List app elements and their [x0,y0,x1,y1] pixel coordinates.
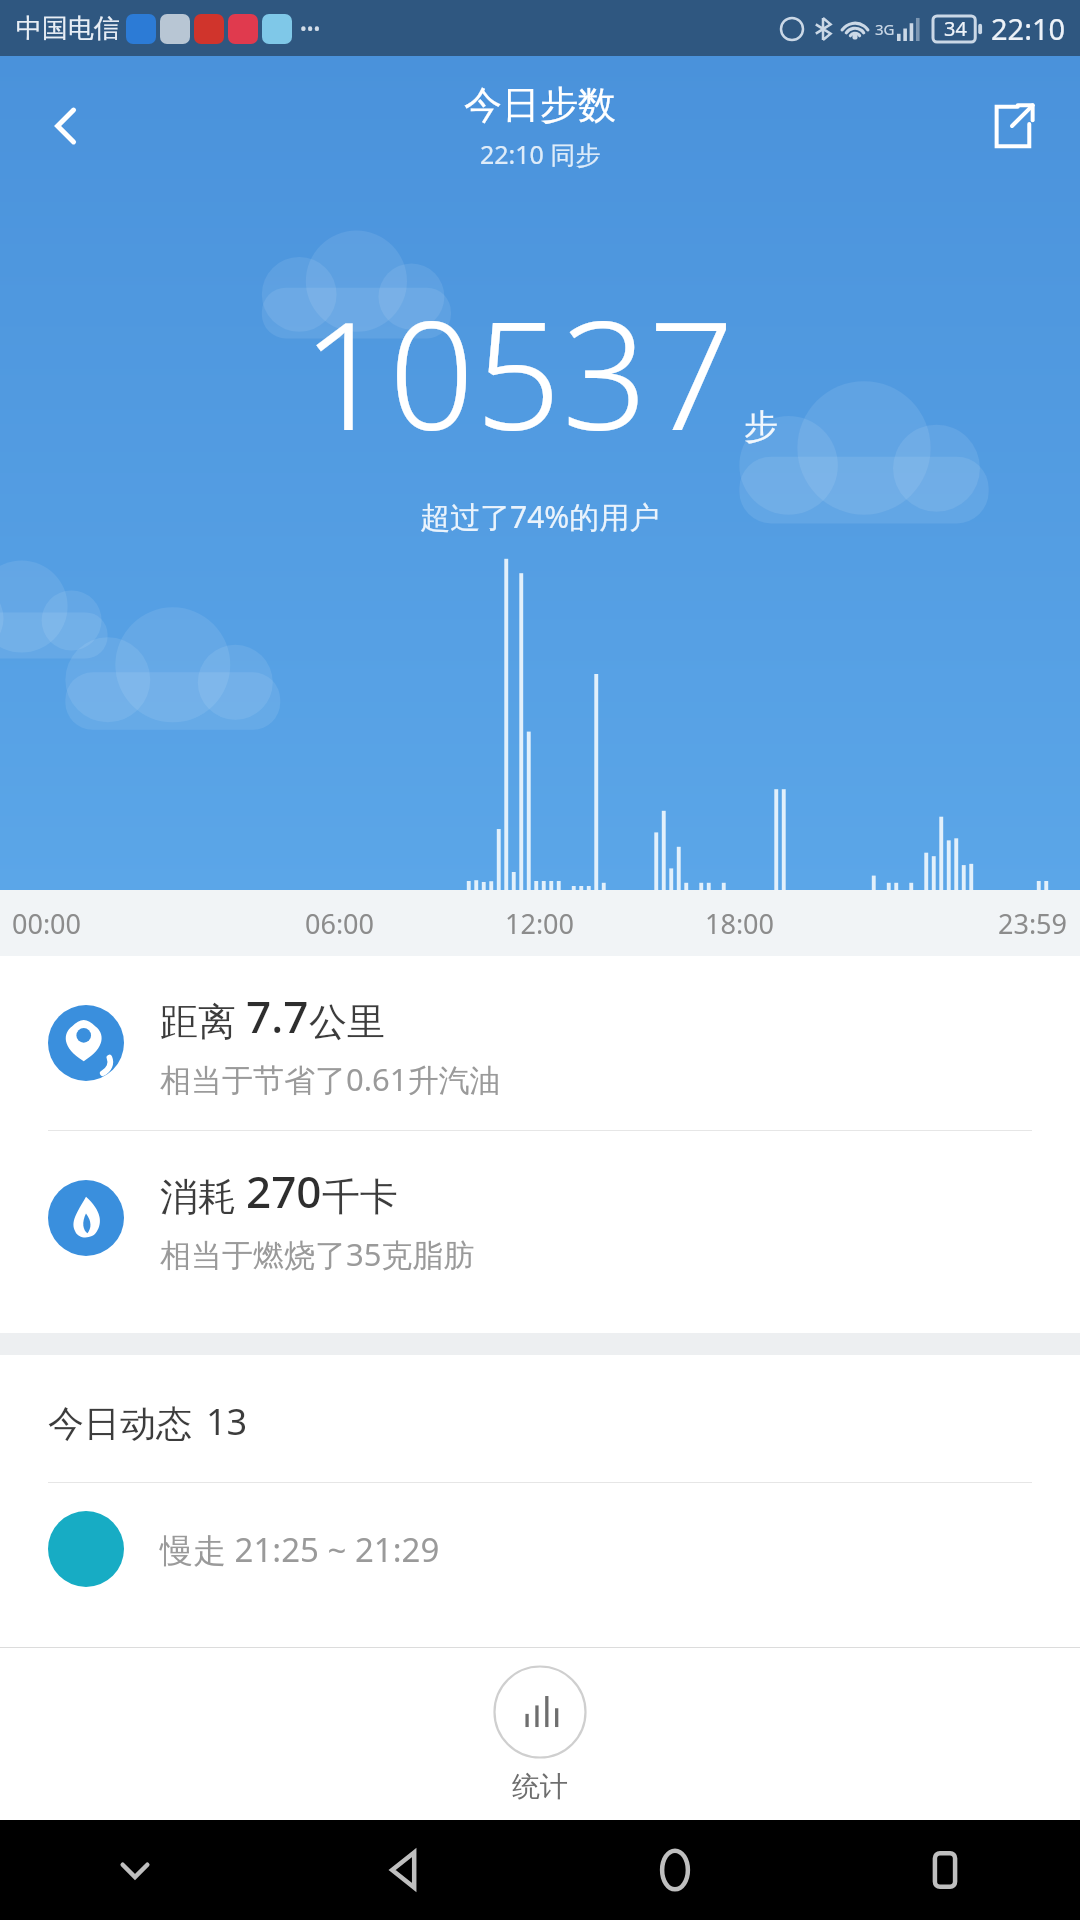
button[interactable]: 距离 [0,956,1080,1130]
button[interactable]: Back [270,1820,540,1920]
staticText: 270 [246,1161,322,1221]
staticText: 13 [206,1397,248,1446]
staticText: 22:10 同步 [480,137,601,171]
staticText: 10537 [302,270,736,474]
staticText: 中国电信 [16,12,120,45]
button[interactable]: Hide keyboard [0,1820,270,1920]
staticText: 统计 [512,1769,568,1804]
button[interactable]: Back [24,84,108,168]
staticText: 消耗 [160,1169,246,1221]
staticText: 3G [875,19,895,39]
button[interactable]: Share [970,84,1054,168]
staticText: 相当于燃烧了35克脂肪 [160,1233,475,1275]
staticText: ••• [300,16,321,41]
staticText: 12:00 [505,905,575,942]
staticText: 距离 [160,994,246,1046]
button[interactable]: 消耗 [0,1131,1080,1305]
staticText: 今日步数 [464,81,616,129]
button[interactable]: 统计 [453,1659,627,1810]
button[interactable]: Home [540,1820,810,1920]
button[interactable]: Recent apps [810,1820,1080,1920]
staticText: 步 [744,405,778,448]
staticText: 06:00 [305,905,375,942]
staticText: 公里 [309,998,385,1046]
staticText: 18:00 [705,905,775,942]
staticText: 超过了74%的用户 [420,496,660,537]
staticText: 慢走 21:25 ~ 21:29 [160,1527,440,1572]
staticText: 今日动态 [48,1401,192,1446]
staticText: 00:00 [12,905,82,942]
staticText: 千卡 [322,1173,398,1221]
staticText: 23:59 [998,905,1068,942]
staticText: 7.7 [246,986,309,1046]
staticText: 22:10 [991,9,1066,48]
staticText: 相当于节省了0.61升汽油 [160,1058,501,1100]
staticText: 34 [944,15,967,42]
button[interactable]: 慢走 21:25 ~ 21:29 [0,1483,1080,1587]
